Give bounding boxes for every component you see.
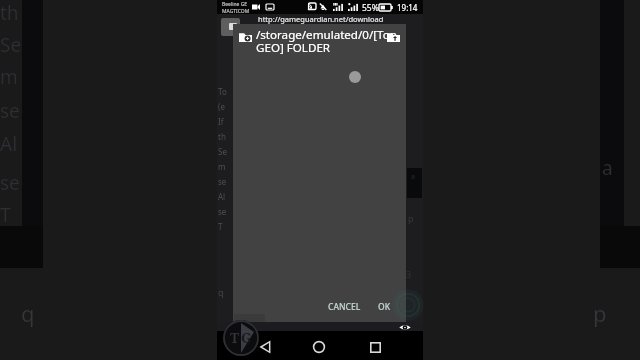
staticText: th: [0, 0, 19, 26]
staticText: a: [602, 155, 613, 181]
staticText: To: [218, 86, 227, 97]
staticText: T: [218, 221, 223, 232]
staticText: q: [21, 298, 35, 328]
staticText: q: [218, 286, 224, 298]
staticText: T: [230, 328, 240, 347]
button[interactable]: Toggle overlay visibility: [399, 323, 411, 332]
button[interactable]: Home: [305, 334, 333, 360]
staticText: se: [218, 176, 227, 187]
staticText: a: [411, 172, 415, 182]
staticText: 55%: [362, 2, 379, 14]
staticText: http://gameguardian.net/download: [258, 14, 384, 24]
staticText: 3: [406, 268, 412, 280]
staticText: If: [218, 116, 224, 127]
button[interactable]: Recent apps: [361, 334, 389, 360]
staticText: T: [0, 202, 11, 228]
staticText: th: [218, 131, 226, 142]
button[interactable]: CANCEL: [322, 296, 367, 318]
staticText: Se: [0, 32, 22, 58]
staticText: se: [0, 170, 20, 196]
staticText: CANCEL: [328, 301, 361, 313]
staticText: p: [593, 298, 607, 328]
staticText: G: [241, 328, 252, 347]
staticText: (e: [218, 101, 225, 112]
staticText: OK: [378, 301, 391, 313]
staticText: 19:14: [397, 2, 418, 13]
staticText: p: [408, 212, 414, 224]
button[interactable]: Go to parent folder: [383, 27, 404, 48]
staticText: se: [0, 98, 20, 124]
staticText: Al: [0, 131, 18, 157]
staticText: Se: [218, 146, 227, 157]
staticText: Al: [218, 191, 226, 202]
staticText: se: [218, 206, 227, 217]
button[interactable]: OK: [372, 296, 397, 318]
staticText: m: [0, 64, 18, 90]
staticText: /storage/emulated/0/[Top GEO] FOLDER: [256, 27, 397, 56]
button[interactable]: Create new folder: [235, 27, 257, 49]
staticText: Beeline GE MAGTICOM: [222, 1, 250, 14]
staticText: m: [218, 161, 226, 172]
button[interactable]: Back: [251, 334, 279, 360]
